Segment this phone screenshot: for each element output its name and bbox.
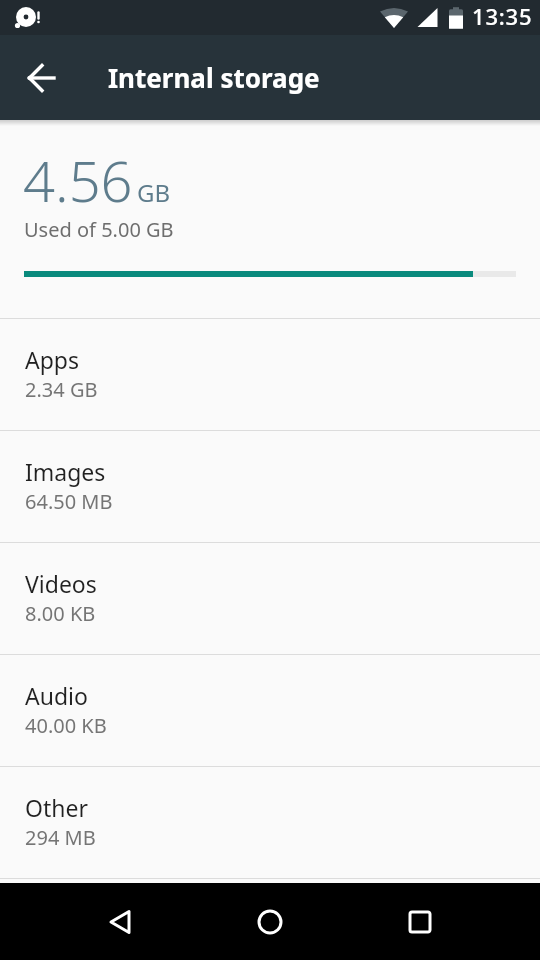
staticText: 13:35 [472, 1, 533, 31]
staticText: GB [137, 176, 171, 209]
button[interactable]: Other [0, 767, 540, 878]
button[interactable] [18, 54, 66, 102]
staticText: Other [25, 792, 88, 823]
staticText: 294 MB [25, 824, 96, 851]
button[interactable]: Images [0, 431, 540, 542]
staticText: 8.00 KB [25, 600, 96, 627]
button[interactable]: Audio [0, 655, 540, 766]
button[interactable]: Apps [0, 319, 540, 430]
staticText: Used of 5.00 GB [24, 216, 174, 243]
staticText: 64.50 MB [25, 488, 113, 515]
staticText: 4.56 [23, 142, 133, 218]
staticText: Audio [25, 680, 88, 711]
staticText: Internal storage [108, 60, 320, 95]
staticText: 2.34 GB [25, 376, 98, 403]
button[interactable] [70, 883, 170, 960]
button[interactable] [220, 883, 320, 960]
staticText: Apps [25, 344, 80, 375]
staticText: Images [25, 456, 106, 487]
staticText: Videos [25, 568, 97, 599]
button[interactable] [370, 883, 470, 960]
staticText: 40.00 KB [25, 712, 107, 739]
button[interactable]: Videos [0, 543, 540, 654]
